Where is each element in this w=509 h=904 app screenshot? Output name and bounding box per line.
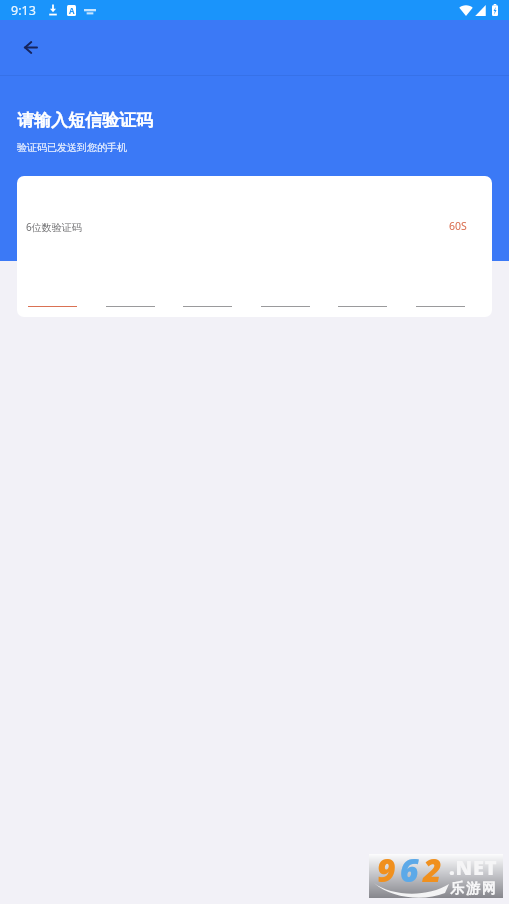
button[interactable]: Digit 3 [183, 270, 232, 307]
staticText: 2 [423, 848, 446, 892]
button[interactable]: Digit 4 [261, 270, 310, 307]
staticText: 验证码已发送到您的手机 [17, 141, 127, 154]
button[interactable]: 6位数验证码 [17, 206, 492, 234]
staticText: 9:13 [11, 2, 36, 19]
staticText: 乐游网 [449, 880, 497, 898]
staticText: A [69, 5, 75, 16]
staticText: 6位数验证码 [26, 220, 82, 234]
staticText: 60S [449, 219, 467, 233]
button[interactable]: Digit 5 [338, 270, 387, 307]
button[interactable]: Digit 1 [28, 270, 77, 307]
staticText: .NET [449, 854, 498, 881]
button[interactable]: Back [9, 25, 53, 69]
staticText: 请输入短信验证码 [17, 110, 153, 131]
button[interactable]: Digit 2 [106, 270, 155, 307]
staticText: 6 [400, 848, 423, 892]
button[interactable]: Digit 6 [416, 270, 465, 307]
staticText: 9 [377, 848, 400, 892]
button[interactable]: 60S [436, 216, 480, 236]
